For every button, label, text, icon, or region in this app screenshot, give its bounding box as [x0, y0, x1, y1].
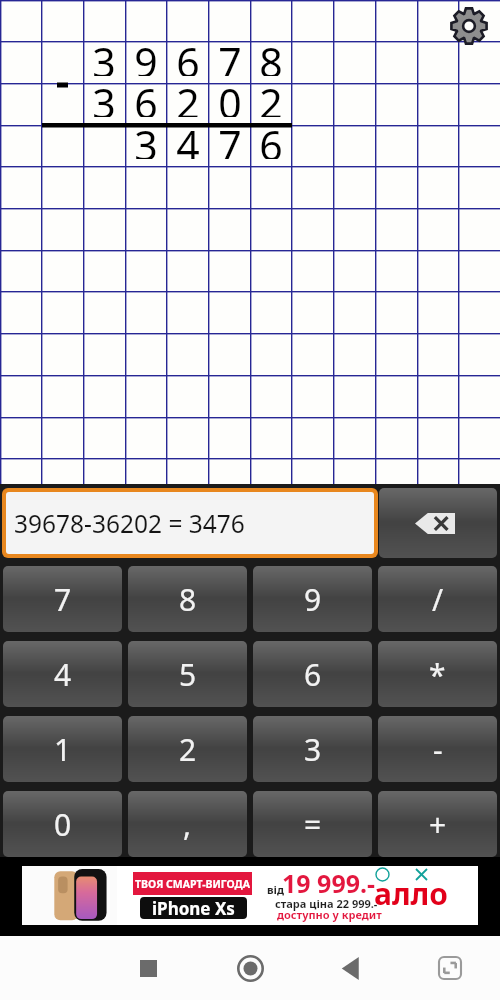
staticText: 3 [92, 75, 116, 117]
button[interactable]: Advertisement [0, 866, 500, 925]
staticText: 4 [176, 117, 200, 159]
staticText: 6 [176, 34, 200, 76]
staticText: 8 [259, 34, 283, 76]
staticText: 2 [259, 75, 283, 117]
staticText: 6 [259, 117, 283, 159]
button[interactable]: 4 [3, 641, 122, 707]
staticText: 4 [54, 654, 72, 695]
staticText: 0 [54, 804, 72, 845]
staticText: ТВОЯ СМАРТ-ВИГОДА [135, 877, 250, 891]
staticText: 7 [218, 34, 242, 76]
button[interactable]: 39678-36202 = 3476 [6, 492, 374, 554]
staticText: стара ціна 22 999.- [275, 896, 378, 911]
button[interactable]: 2 [128, 716, 247, 782]
staticText: 6 [134, 75, 158, 117]
staticText: * [429, 654, 446, 695]
staticText: доступно у кредит [277, 907, 382, 922]
staticText: = [304, 804, 322, 845]
staticText: 3 [304, 729, 322, 770]
button[interactable]: Close ad [414, 867, 429, 882]
staticText: 6 [304, 654, 322, 695]
staticText: алло [374, 873, 448, 914]
button[interactable]: , [128, 791, 247, 857]
button[interactable]: * [378, 641, 497, 707]
staticText: iPhone Xs [152, 897, 235, 919]
staticText: 7 [218, 117, 242, 159]
button[interactable]: 9 [253, 566, 372, 632]
staticText: + [429, 804, 447, 845]
button[interactable]: Home [228, 936, 272, 1000]
button[interactable]: Recents [126, 936, 170, 1000]
staticText: / [432, 579, 444, 620]
staticText: - [433, 729, 443, 770]
staticText: 3 [92, 34, 116, 76]
staticText: 5 [179, 654, 197, 695]
button[interactable]: 8 [128, 566, 247, 632]
button[interactable]: Back [328, 936, 372, 1000]
button[interactable]: 7 [3, 566, 122, 632]
button[interactable]: 3 [253, 716, 372, 782]
button[interactable]: Settings [450, 7, 488, 45]
button[interactable]: 6 [253, 641, 372, 707]
button[interactable]: 5 [128, 641, 247, 707]
staticText: 3 [134, 117, 158, 159]
button[interactable]: - [378, 716, 497, 782]
staticText: 2 [179, 729, 197, 770]
staticText: , [183, 804, 192, 845]
button[interactable]: Ad info [375, 867, 390, 882]
button[interactable]: 1 [3, 716, 122, 782]
staticText: 0 [218, 75, 242, 117]
button[interactable]: + [378, 791, 497, 857]
button[interactable]: / [378, 566, 497, 632]
button[interactable]: = [253, 791, 372, 857]
button[interactable]: Fullscreen [428, 936, 472, 1000]
staticText: 7 [54, 579, 72, 620]
staticText: 8 [179, 579, 197, 620]
staticText: 2 [176, 75, 200, 117]
staticText: 1 [54, 729, 72, 770]
staticText: 19 999.- [282, 866, 376, 900]
staticText: 9 [134, 34, 158, 76]
button[interactable]: 0 [3, 791, 122, 857]
staticText: 39678-36202 = 3476 [14, 507, 245, 540]
staticText: від [267, 882, 284, 897]
staticText: 9 [304, 579, 322, 620]
button[interactable]: Backspace [379, 488, 497, 558]
